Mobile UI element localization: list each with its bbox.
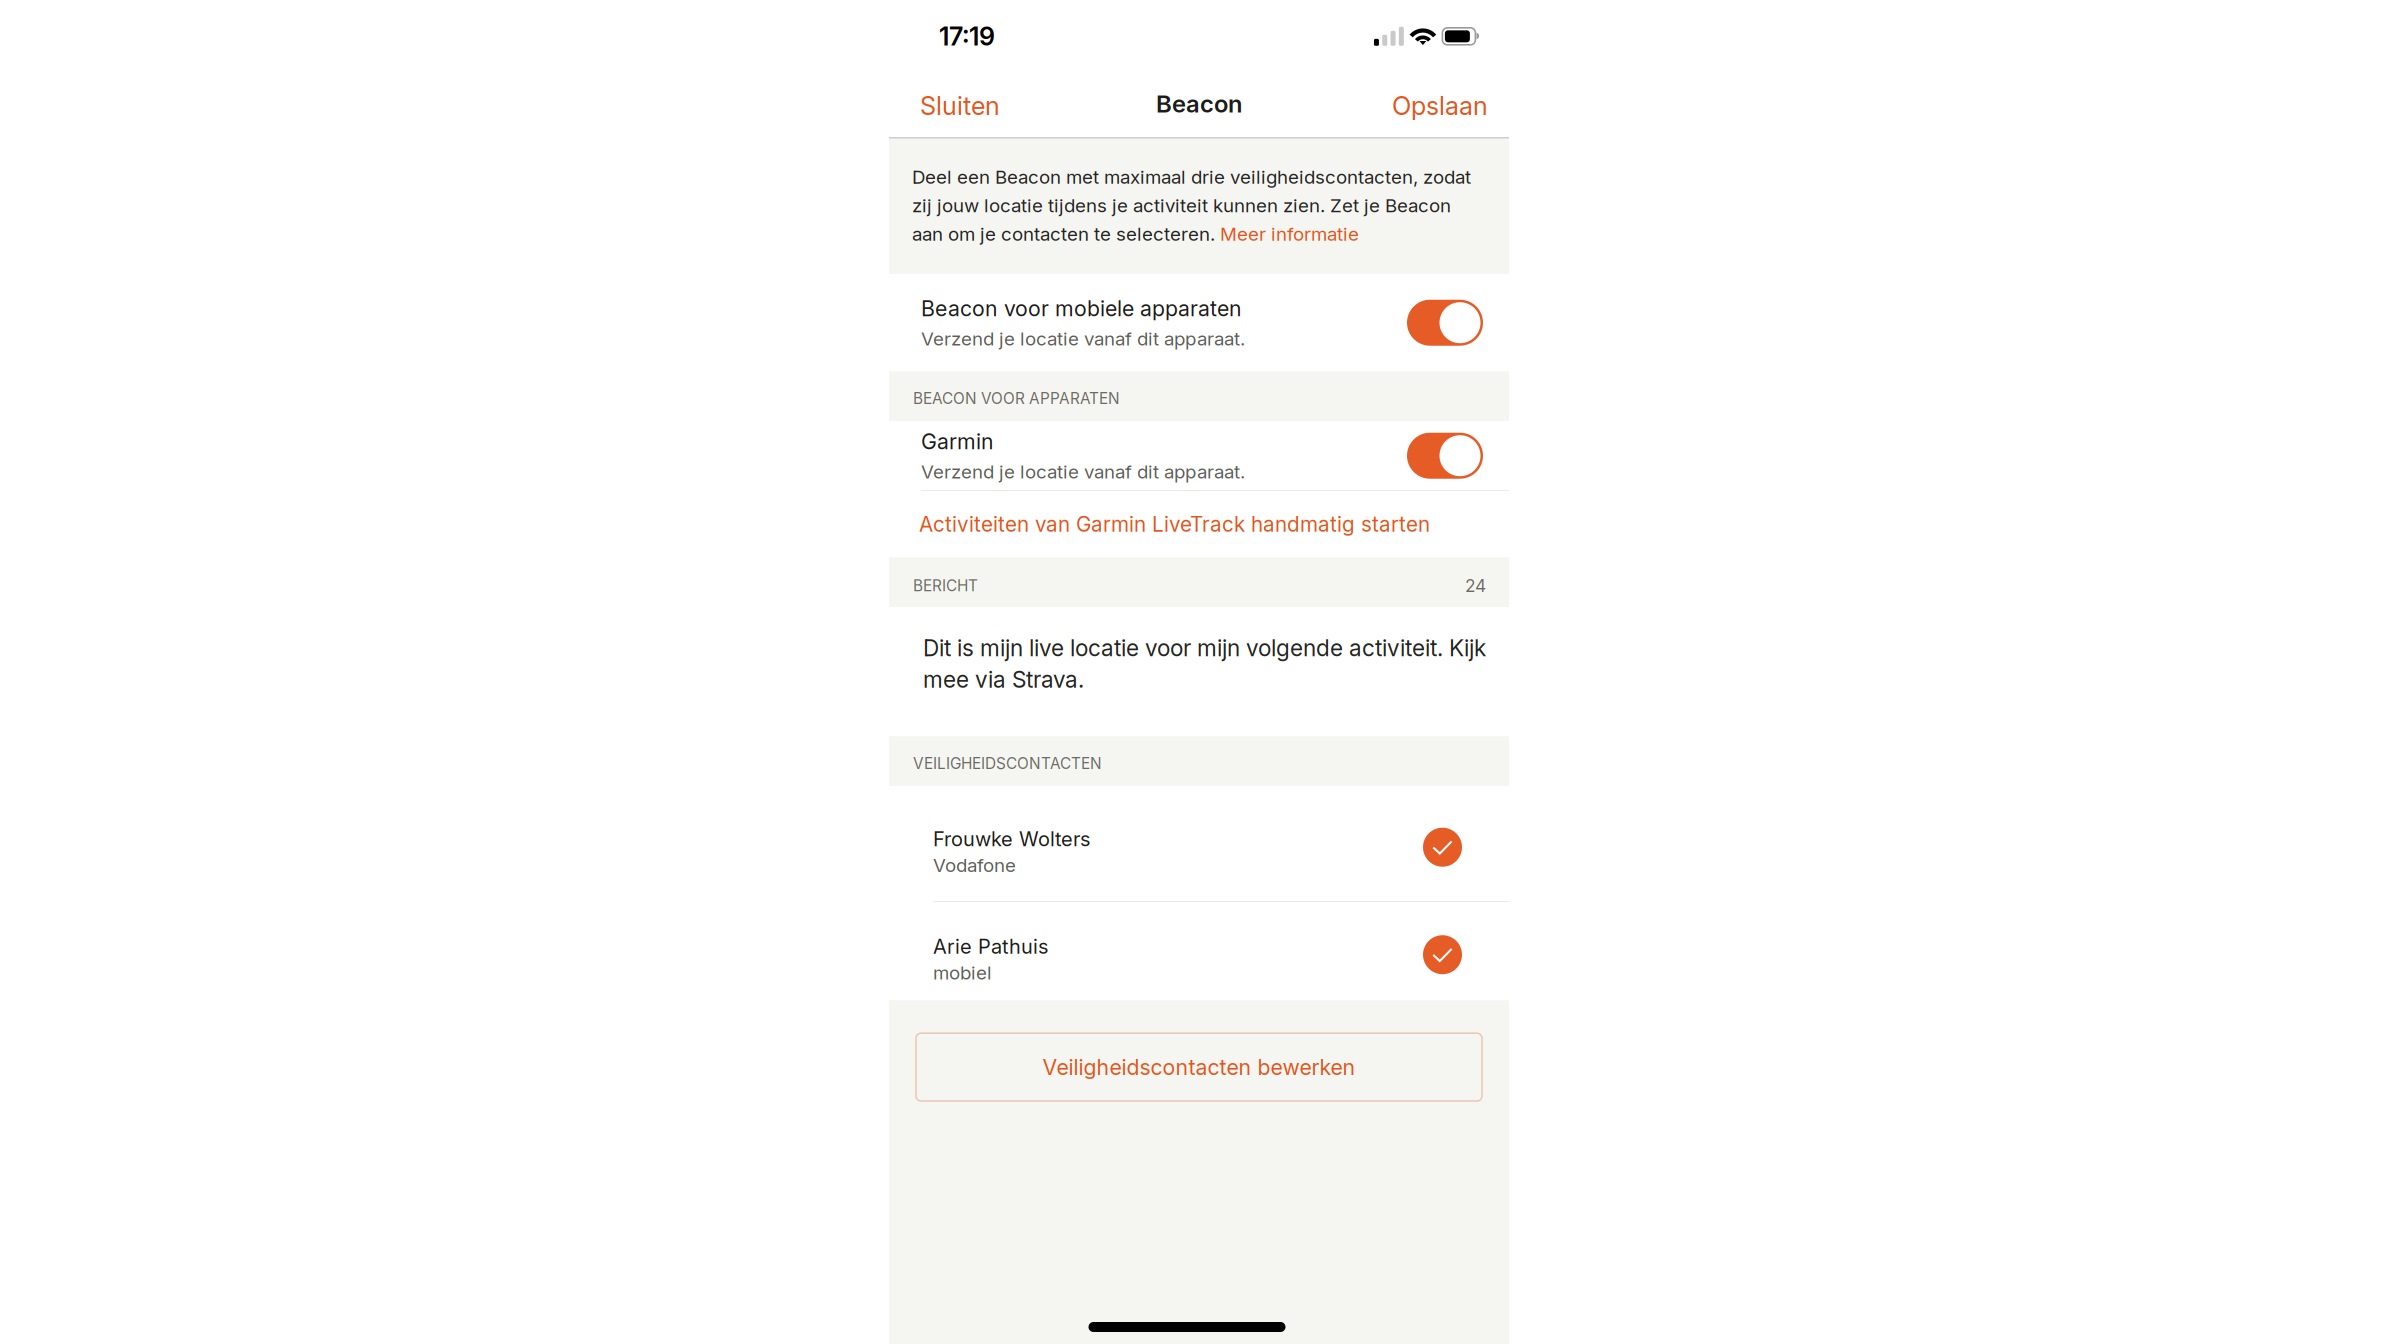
button[interactable]: Arie Pathuis	[889, 902, 1509, 1000]
staticText: Beacon	[1156, 89, 1242, 118]
staticText: Frouwke Wolters	[933, 827, 1090, 851]
staticText: 17:19	[939, 21, 995, 52]
button[interactable]: Beacon voor mobiele apparaten	[921, 295, 1245, 350]
button[interactable]: Opslaan	[1385, 78, 1495, 133]
staticText: Veiligheidscontacten bewerken	[1042, 1054, 1355, 1080]
button[interactable]: Beacon voor mobiele apparaten	[1407, 300, 1483, 346]
staticText: BERICHT	[913, 576, 978, 595]
staticText: Deel een Beacon met maximaal drie veilig…	[912, 166, 1471, 245]
button[interactable]: Activiteiten van Garmin LiveTrack handma…	[889, 491, 1509, 557]
button[interactable]: Garmin	[921, 428, 1245, 483]
staticText: Dit is mijn live locatie voor mijn volge…	[923, 634, 1486, 693]
button[interactable]: Frouwke Wolters	[1423, 828, 1462, 867]
staticText: 24	[1465, 575, 1486, 596]
button[interactable]: Garmin	[1407, 433, 1483, 479]
staticText: Activiteiten van Garmin LiveTrack handma…	[919, 512, 1430, 537]
staticText: BEACON VOOR APPARATEN	[913, 389, 1120, 408]
staticText: Sluiten	[920, 90, 1000, 121]
staticText: Garmin	[921, 428, 994, 454]
staticText: mobiel	[933, 961, 992, 984]
button[interactable]: Veiligheidscontacten bewerken	[916, 1033, 1482, 1101]
staticText: Verzend je locatie vanaf dit apparaat.	[921, 460, 1245, 483]
staticText: Vodafone	[933, 854, 1016, 877]
staticText: Opslaan	[1392, 90, 1488, 121]
staticText: Beacon voor mobiele apparaten	[921, 295, 1242, 321]
button[interactable]: Sluiten	[913, 78, 1007, 133]
button[interactable]: Arie Pathuis	[1423, 935, 1462, 974]
button[interactable]: Frouwke Wolters	[889, 786, 1509, 901]
staticText: Arie Pathuis	[933, 934, 1048, 958]
staticText: Verzend je locatie vanaf dit apparaat.	[921, 327, 1245, 350]
staticText: VEILIGHEIDSCONTACTEN	[913, 754, 1102, 773]
